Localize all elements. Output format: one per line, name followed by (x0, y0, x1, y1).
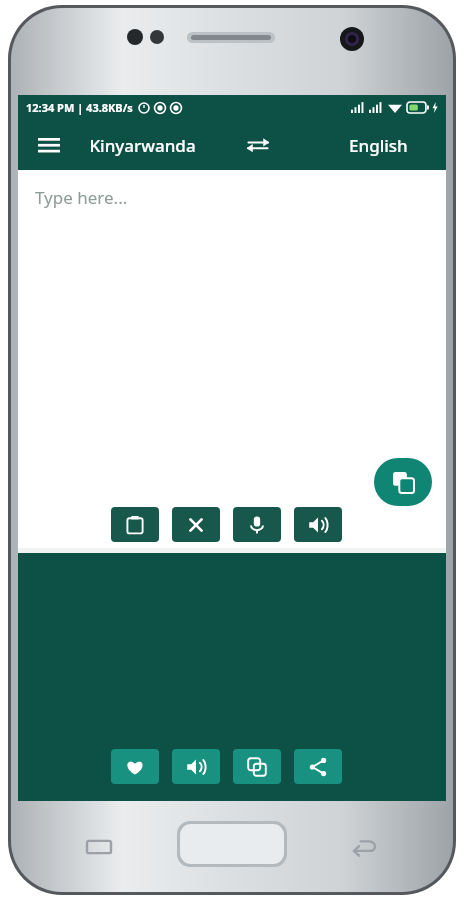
staticText: Type here... (35, 186, 128, 209)
button[interactable]: Copy (233, 749, 281, 784)
button[interactable]: Recents (85, 833, 113, 861)
button[interactable]: Translate (374, 458, 432, 506)
staticText: Kinyarwanda (89, 134, 196, 157)
staticText: English (349, 134, 408, 157)
button[interactable]: Favourite (111, 749, 159, 784)
button[interactable]: Speak translation (172, 749, 220, 784)
button[interactable]: Speak (294, 507, 342, 542)
button[interactable]: Voice input (233, 507, 281, 542)
button[interactable]: Clear (172, 507, 220, 542)
button[interactable]: Swap languages (205, 120, 311, 170)
button[interactable]: Paste (111, 507, 159, 542)
button[interactable]: Menu (18, 120, 80, 170)
button[interactable]: Share (294, 749, 342, 784)
button[interactable]: Back (349, 833, 377, 861)
staticText: 12:34 PM | 43.8KB/s (26, 100, 133, 115)
button[interactable]: Kinyarwanda (80, 120, 205, 170)
button[interactable]: English (311, 120, 446, 170)
